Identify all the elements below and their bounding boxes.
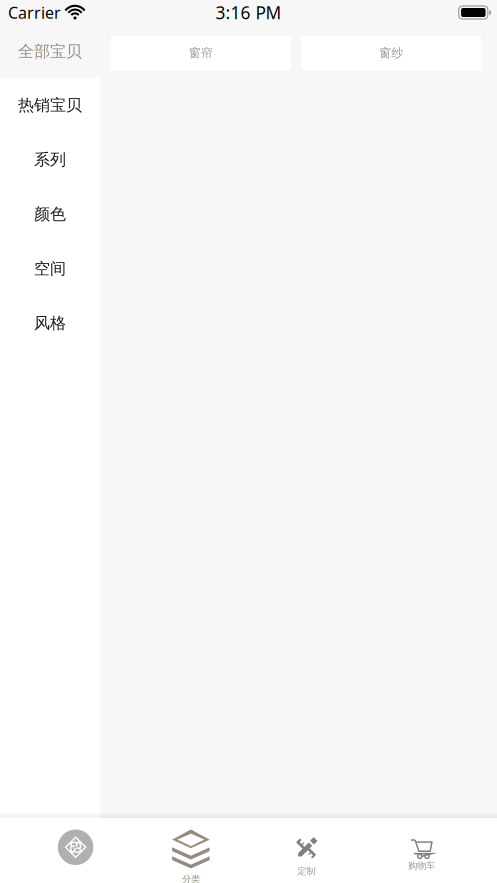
staticText: 窗纱 — [379, 46, 403, 60]
staticText: 热销宝贝 — [18, 95, 82, 115]
button[interactable]: 定制 — [248, 818, 364, 883]
staticText: 空间 — [34, 259, 66, 279]
staticText: 购物车 — [408, 860, 435, 871]
staticText: Carrier — [8, 2, 61, 23]
button[interactable]: 风格 — [0, 296, 100, 350]
button[interactable]: 颜色 — [0, 187, 100, 241]
button[interactable]: 首页 — [18, 818, 133, 883]
staticText: 定制 — [297, 865, 315, 877]
button[interactable]: 分类 — [133, 818, 248, 883]
button[interactable]: 购物车 — [364, 818, 479, 883]
staticText: 分类 — [182, 873, 200, 883]
staticText: 3:16 PM — [215, 1, 281, 24]
staticText: 颜色 — [34, 204, 66, 224]
button[interactable]: 全部宝贝 — [0, 25, 100, 78]
staticText: 系列 — [34, 150, 66, 170]
staticText: 窗帘 — [189, 46, 213, 60]
button[interactable]: 热销宝贝 — [0, 78, 100, 132]
staticText: 风格 — [34, 313, 66, 333]
staticText: 全部宝贝 — [18, 42, 82, 61]
button[interactable]: 空间 — [0, 241, 100, 296]
button[interactable]: 窗帘 — [111, 36, 291, 70]
button[interactable]: 系列 — [0, 132, 100, 187]
button[interactable]: 窗纱 — [301, 36, 481, 70]
